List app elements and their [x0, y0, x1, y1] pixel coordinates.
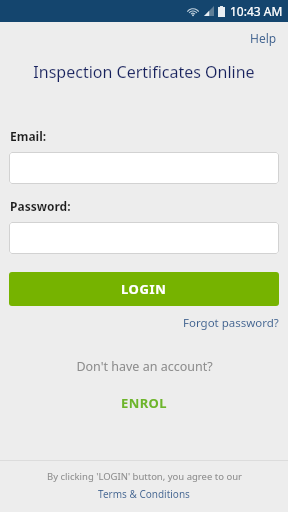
staticText: ENROL: [121, 394, 167, 412]
staticText: Terms & Conditions: [98, 487, 190, 501]
button[interactable]: Terms & Conditions: [88, 486, 200, 502]
staticText: Forgot password?: [183, 315, 279, 331]
staticText: 10:43 AM: [230, 3, 283, 19]
button[interactable]: ENROL: [103, 391, 185, 415]
button[interactable]: [9, 152, 279, 184]
other: Cellular signal: [204, 6, 214, 16]
button[interactable]: LOGIN: [9, 272, 279, 306]
button[interactable]: Forgot password?: [171, 313, 288, 333]
button[interactable]: Help: [236, 22, 288, 50]
other: Wi-Fi signal: [187, 6, 199, 17]
staticText: Inspection Certificates Online: [33, 61, 255, 83]
other: Battery: [218, 6, 225, 17]
staticText: Email:: [10, 128, 47, 144]
button[interactable]: [9, 222, 279, 254]
staticText: LOGIN: [121, 280, 167, 298]
staticText: By clicking 'LOGIN' button, you agree to…: [47, 470, 242, 483]
staticText: Don't have an account?: [76, 358, 213, 375]
staticText: Password:: [10, 198, 71, 214]
staticText: Help: [250, 30, 277, 46]
